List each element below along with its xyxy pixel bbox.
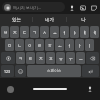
- button[interactable]: ㅑ: [70, 26, 79, 38]
- staticText: ㅔ: [92, 30, 97, 35]
- staticText: ㅛ: [52, 30, 57, 35]
- button[interactable]: Voice: [67, 3, 76, 12]
- button[interactable]: Enter: [82, 65, 99, 77]
- button[interactable]: ㅁ: [5, 39, 14, 51]
- staticText: ㅕ: [62, 30, 67, 35]
- button[interactable]: ㅣ: [85, 39, 94, 51]
- button[interactable]: ㅎ: [45, 39, 54, 51]
- button[interactable]: ㅈ: [10, 26, 19, 38]
- button[interactable]: ㅍ: [46, 52, 55, 64]
- button[interactable]: 나: [67, 14, 100, 25]
- button[interactable]: ㅌ: [26, 52, 35, 64]
- staticText: ㄴ: [17, 43, 22, 48]
- button[interactable]: ㅂ: [1, 26, 9, 38]
- button[interactable]: Shift: [1, 52, 15, 64]
- button[interactable]: Emoji: [15, 65, 26, 77]
- staticText: ㅜ: [68, 56, 73, 61]
- staticText: ㅊ: [38, 56, 43, 61]
- staticText: ㄱ: [32, 30, 37, 35]
- staticText: 123: [4, 69, 11, 74]
- staticText: ㅋ: [18, 56, 23, 61]
- staticText: ㅌ: [28, 56, 33, 61]
- staticText: ㅣ: [87, 43, 92, 48]
- staticText: 네가: [45, 17, 54, 23]
- button[interactable]: Sticker: [89, 3, 98, 12]
- button[interactable]: ㅠ: [56, 52, 65, 64]
- button[interactable]: ㅡ: [76, 52, 85, 64]
- button[interactable]: ㅋ: [16, 52, 25, 64]
- staticText: ㄷ: [22, 30, 27, 35]
- button[interactable]: ㄷ: [20, 26, 29, 38]
- staticText: ㅡ: [78, 56, 83, 61]
- staticText: ㅈ: [12, 30, 17, 35]
- button[interactable]: ㅊ: [36, 52, 45, 64]
- button[interactable]: ㅕ: [60, 26, 69, 38]
- staticText: ㅠ: [58, 56, 63, 61]
- button[interactable]: ㅜ: [66, 52, 75, 64]
- button[interactable]: Keyboard switch: [5, 84, 15, 94]
- button[interactable]: 메시지 보내기...: [2, 2, 65, 12]
- button[interactable]: ㄹ: [35, 39, 44, 51]
- staticText: ㅁ: [7, 43, 12, 48]
- staticText: ㅂ: [3, 30, 8, 35]
- button[interactable]: ㅇ: [25, 39, 34, 51]
- staticText: ㅇ: [27, 43, 32, 48]
- staticText: ㅎ: [47, 43, 52, 48]
- staticText: ㅗ: [57, 43, 62, 48]
- button[interactable]: ㄴ: [15, 39, 24, 51]
- staticText: ㅑ: [72, 30, 77, 35]
- staticText: ㅐ: [82, 30, 87, 35]
- button[interactable]: ㅔ: [90, 26, 99, 38]
- button[interactable]: 네가: [33, 14, 66, 25]
- button[interactable]: ㅛ: [50, 26, 59, 38]
- staticText: 나: [81, 17, 86, 23]
- button[interactable]: 123: [1, 65, 14, 77]
- staticText: ㅓ: [67, 43, 72, 48]
- staticText: ㅏ: [77, 43, 82, 48]
- button[interactable]: 스페이스: [27, 65, 81, 77]
- button[interactable]: ㅗ: [55, 39, 64, 51]
- staticText: ㅍ: [48, 56, 53, 61]
- button[interactable]: 있는: [0, 14, 32, 25]
- button[interactable]: Voice input: [85, 84, 95, 94]
- staticText: 있는: [12, 17, 21, 23]
- staticText: 스페이스: [47, 69, 62, 74]
- button[interactable]: Gallery: [78, 3, 87, 12]
- button[interactable]: ㅐ: [80, 26, 89, 38]
- staticText: 메시지 보내기...: [13, 5, 42, 10]
- button[interactable]: ㅓ: [65, 39, 74, 51]
- button[interactable]: Backspace: [86, 52, 99, 64]
- button[interactable]: ㄱ: [30, 26, 39, 38]
- button[interactable]: ㅅ: [40, 26, 49, 38]
- staticText: ㅅ: [42, 30, 47, 35]
- staticText: ㄹ: [37, 43, 42, 48]
- button[interactable]: ㅏ: [75, 39, 84, 51]
